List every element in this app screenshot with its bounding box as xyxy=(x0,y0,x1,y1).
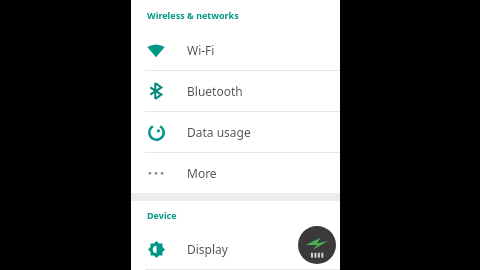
staticText: Bluetooth xyxy=(187,83,243,99)
button[interactable]: Data usage xyxy=(131,112,340,152)
staticText: More xyxy=(187,165,217,181)
staticText: Display xyxy=(187,241,228,257)
staticText: Wireless & networks xyxy=(147,9,239,21)
staticText: Wi-Fi xyxy=(187,42,215,58)
button[interactable]: Wi-Fi xyxy=(131,30,340,70)
button[interactable]: Display xyxy=(131,229,340,269)
staticText: Data usage xyxy=(187,124,251,140)
button[interactable]: More xyxy=(131,153,340,193)
other: Channel logo xyxy=(298,226,336,264)
button[interactable]: Bluetooth xyxy=(131,71,340,111)
staticText: Device xyxy=(147,209,177,221)
